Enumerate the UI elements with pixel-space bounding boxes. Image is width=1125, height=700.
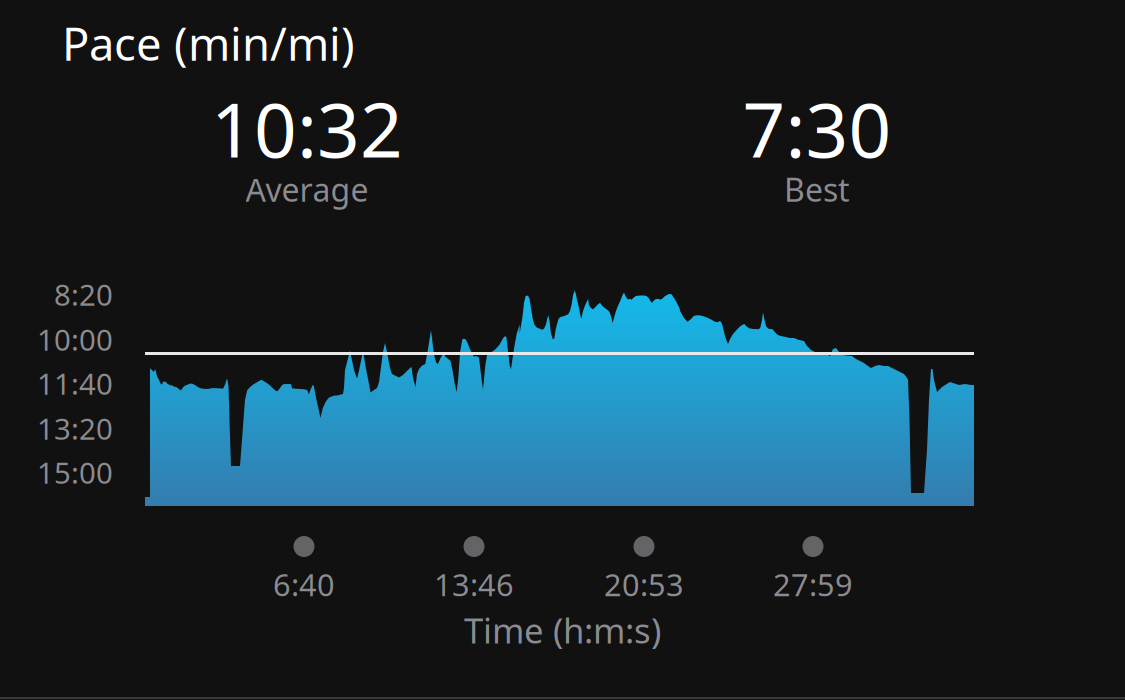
staticText: Time (h:m:s): [464, 607, 661, 653]
staticText: 15:00: [37, 453, 113, 492]
staticText: Best: [784, 168, 850, 210]
staticText: 11:40: [37, 364, 113, 403]
button[interactable]: Pace (min/mi): [0, 0, 1125, 232]
staticText: 13:20: [37, 409, 113, 448]
staticText: Average: [245, 168, 368, 210]
button[interactable]: Pace chart: [0, 232, 1125, 697]
staticText: 8:20: [54, 275, 113, 314]
staticText: 13:46: [434, 564, 514, 605]
staticText: 10:00: [37, 320, 113, 359]
staticText: 6:40: [273, 564, 335, 605]
staticText: 7:30: [742, 79, 891, 178]
staticText: 27:59: [773, 564, 853, 605]
staticText: 10:32: [211, 79, 403, 178]
staticText: Pace (min/mi): [62, 13, 355, 73]
staticText: 20:53: [604, 564, 684, 605]
